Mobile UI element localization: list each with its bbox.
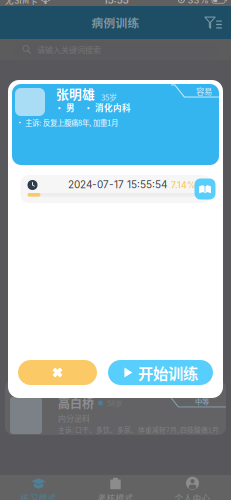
staticText: 容易 bbox=[196, 85, 212, 97]
staticText: 2024-07-17 15:55:54 bbox=[68, 178, 167, 191]
staticText: 张明雄 bbox=[56, 84, 95, 103]
staticText: 35岁 bbox=[101, 91, 117, 103]
staticText: 无SIM卡 bbox=[5, 0, 38, 6]
staticText: 内分泌科 bbox=[58, 412, 90, 424]
staticText: 15:55 bbox=[103, 0, 128, 6]
button[interactable]: 练习模式 bbox=[0, 475, 77, 500]
staticText: 主诉: 口干、多饮、多尿、体重减轻7月, 四肢酸痛1月 bbox=[58, 425, 219, 434]
staticText: 主诉: 口干、多饮、多尿、体重减轻7月, 四肢酸痛1月 bbox=[49, 384, 210, 393]
staticText: 中等 bbox=[195, 396, 209, 406]
staticText: 高白桥 bbox=[58, 394, 94, 412]
button[interactable]: 主诉: 口干、多饮、多尿、体重减轻7月, 四肢酸痛1月 bbox=[5, 380, 226, 406]
staticText: • 消化内科 bbox=[84, 101, 131, 114]
staticText: • 男 bbox=[55, 101, 75, 114]
staticText: 个人中心 bbox=[174, 492, 210, 500]
staticText: 练习模式 bbox=[20, 492, 56, 500]
staticText: 病例训练 bbox=[91, 14, 139, 31]
button[interactable]: 个人中心 bbox=[154, 475, 231, 500]
button[interactable]: 筛选 bbox=[195, 10, 225, 34]
button[interactable]: 考核模式 bbox=[77, 475, 154, 500]
staticText: 请输入关键词搜索 bbox=[37, 44, 101, 55]
button[interactable]: 高白桥 bbox=[5, 394, 226, 435]
button[interactable]: 查看病例 bbox=[194, 178, 215, 199]
button[interactable]: 请输入关键词搜索 bbox=[12, 42, 219, 57]
button[interactable]: 关闭 bbox=[18, 360, 97, 385]
button[interactable]: 开始训练 bbox=[108, 360, 213, 385]
staticText: 考核模式 bbox=[97, 492, 133, 500]
staticText: 开始训练 bbox=[138, 361, 198, 384]
staticText: • 主诉: 反复上腹痛8年, 加重1月 bbox=[16, 117, 118, 128]
staticText: 7.14% bbox=[171, 180, 196, 190]
staticText: 33% bbox=[187, 0, 208, 6]
staticText: 58岁 bbox=[107, 398, 122, 408]
